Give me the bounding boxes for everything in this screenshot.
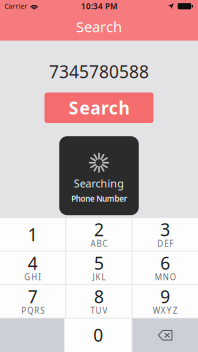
staticText: 9 [160,285,170,308]
staticText: 8 [94,285,104,308]
staticText: P Q R S [21,305,44,316]
button[interactable]: 9 [132,285,198,318]
button[interactable]: 0 [65,319,132,352]
staticText: 4 [28,251,38,274]
staticText: 3 [160,218,170,241]
staticText: G H I [24,272,41,282]
staticText: Phone Number [71,193,127,204]
staticText: Search [76,17,122,36]
staticText: 10:34 PM [81,1,117,11]
staticText: 1 [28,223,38,246]
staticText: 5 [94,251,104,274]
button[interactable]: 8 [66,285,132,318]
staticText: 2 [94,218,104,241]
button[interactable]: 7 [0,285,65,318]
button[interactable]: 5 [66,252,132,284]
button[interactable]: 2 [66,218,132,251]
staticText: 7345780588 [49,60,149,83]
staticText: J K L [92,272,105,282]
staticText: Searching [74,176,124,191]
staticText: Carrier [4,2,27,11]
staticText: Search [69,96,129,119]
button[interactable]: Delete [132,319,198,352]
staticText: 7 [28,285,38,308]
button[interactable]: 6 [132,252,198,284]
staticText: 0 [93,323,103,346]
button[interactable]: 4 [0,252,65,284]
staticText: A B C [90,238,107,249]
button[interactable]: 1 [0,218,65,251]
staticText: W X Y Z [153,305,178,316]
staticText: T U V [90,305,107,316]
button[interactable]: 3 [132,218,198,251]
staticText: 6 [160,251,170,274]
staticText: D E F [157,238,173,249]
staticText: M N O [155,272,176,282]
button[interactable]: Search [44,92,153,123]
